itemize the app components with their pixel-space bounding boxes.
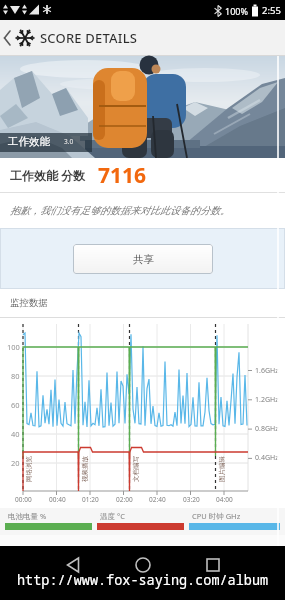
button[interactable] (178, 555, 248, 575)
staticText: 40 (11, 429, 20, 439)
staticText: 2:55 (262, 4, 281, 17)
staticText: 7116 (98, 161, 147, 190)
staticText: 0.8GHz (255, 424, 279, 434)
staticText: 视频播放 (81, 456, 89, 482)
staticText: 温度 °C (100, 511, 125, 521)
staticText: SCORE DETAILS (40, 29, 138, 47)
staticText: 抱歉，我们没有足够的数据来对比此设备的分数。 (10, 204, 230, 217)
staticText: 04:00 (216, 495, 233, 504)
staticText: 工作效能 (8, 135, 50, 148)
staticText: CPU 时钟 GHz (192, 511, 241, 521)
button[interactable]: 共享 (73, 244, 213, 274)
staticText: 02:00 (116, 495, 133, 504)
button[interactable] (38, 555, 108, 575)
button[interactable] (108, 555, 178, 575)
button[interactable]: SCORE DETAILS (0, 20, 285, 55)
staticText: 共享 (133, 253, 154, 266)
staticText: 3.0 (64, 137, 74, 146)
staticText: 60 (11, 400, 20, 410)
staticText: 1.6GHz (255, 366, 279, 376)
staticText: 100% (225, 5, 248, 17)
staticText: 图片编辑 (218, 456, 226, 482)
staticText: 01:20 (82, 495, 99, 504)
staticText: 80 (11, 371, 20, 381)
staticText: 20 (11, 458, 20, 468)
staticText: 文档编写 (132, 456, 140, 482)
button[interactable]: 温度 °C (97, 508, 184, 535)
staticText: 工作效能 分数 (10, 167, 86, 183)
staticText: 00:40 (49, 495, 66, 504)
staticText: 00:00 (15, 495, 32, 504)
staticText: 0.4GHz (255, 453, 279, 463)
staticText: 电池电量 % (8, 511, 47, 521)
staticText: 网络浏览 (25, 456, 33, 482)
button[interactable]: 电池电量 % (5, 508, 92, 535)
staticText: 02:40 (149, 495, 166, 504)
staticText: 100 (7, 342, 20, 352)
staticText: 1.2GHz (255, 395, 279, 405)
staticText: http://www.fox-saying.com/album (17, 571, 269, 589)
staticText: 监控数据 (10, 297, 48, 309)
button[interactable]: CPU 时钟 GHz (189, 508, 280, 535)
staticText: 03:20 (183, 495, 200, 504)
